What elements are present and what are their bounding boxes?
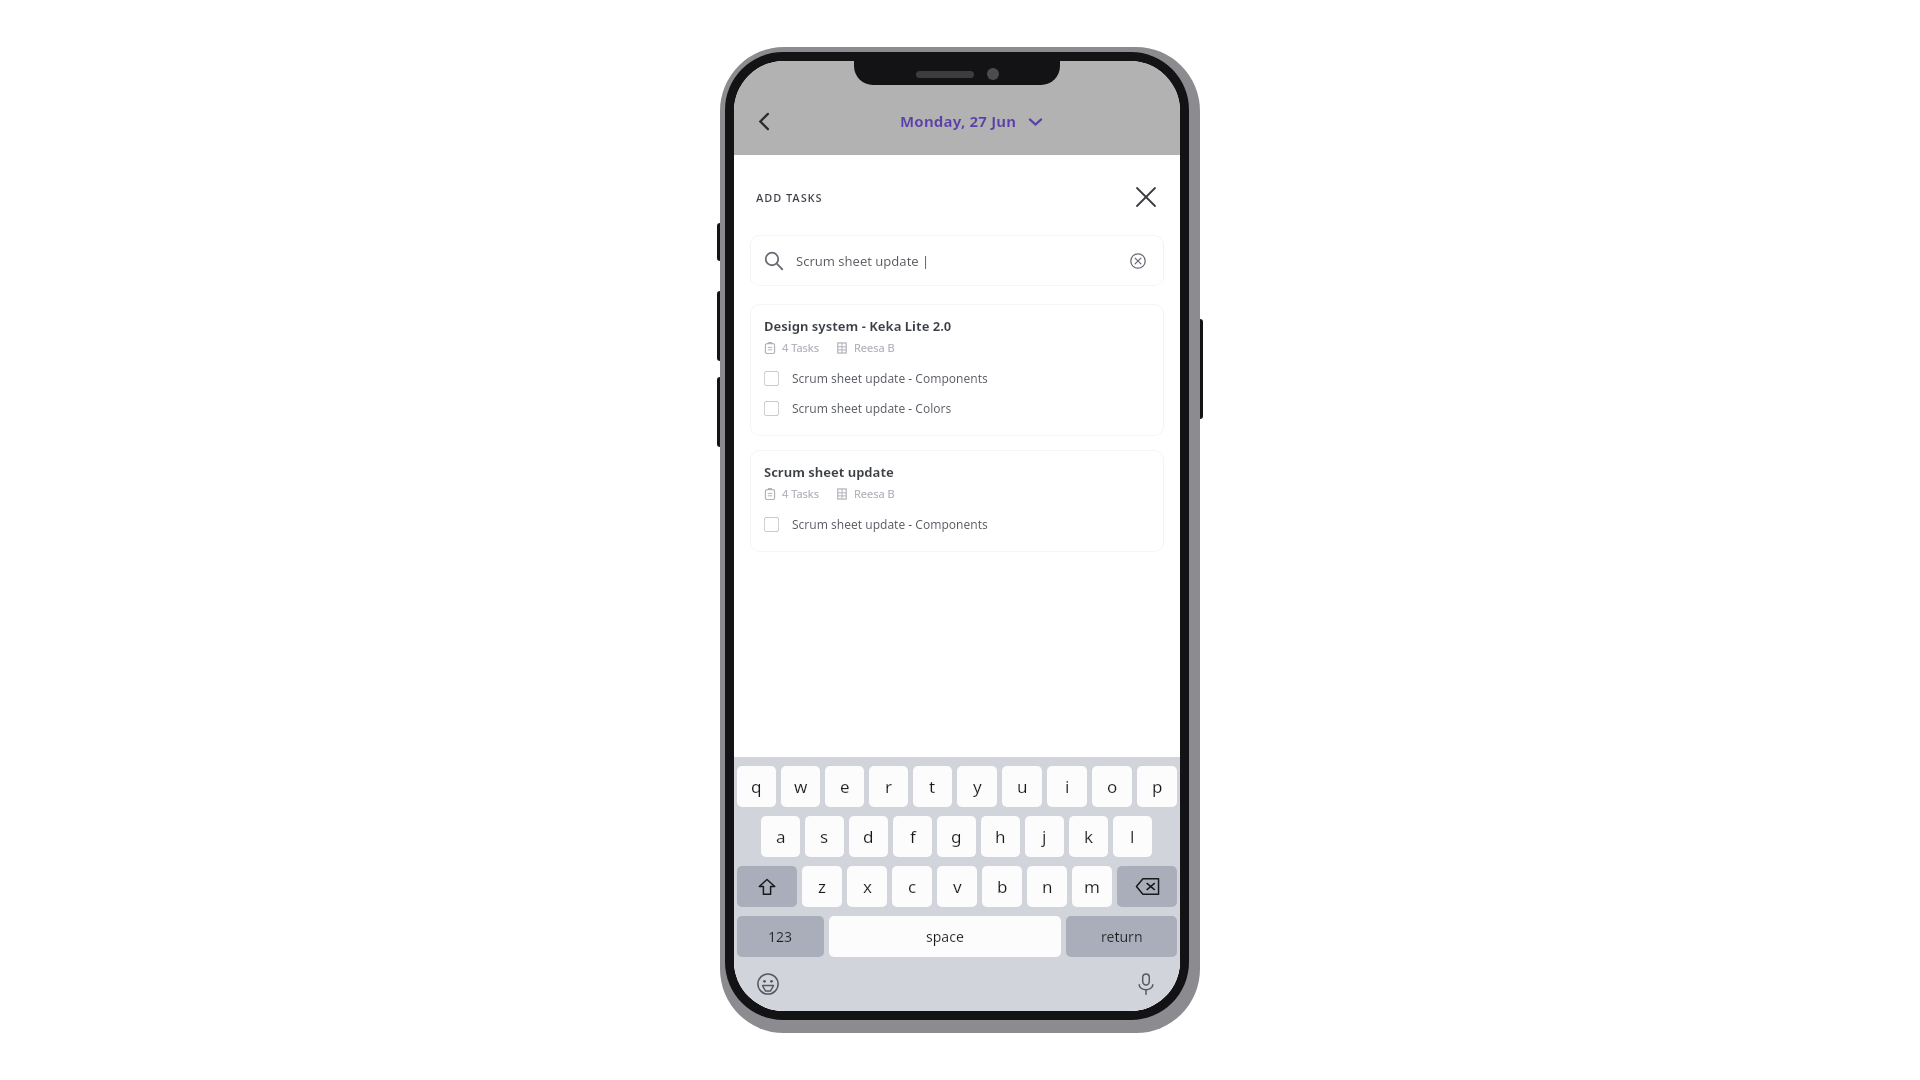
button[interactable]: l (1113, 816, 1152, 857)
staticText: 4 Tasks (782, 340, 819, 355)
staticText: Scrum sheet update | (796, 252, 930, 270)
button[interactable]: m (1072, 866, 1112, 907)
staticText: n (1042, 875, 1053, 898)
staticText: Reesa B (854, 340, 895, 355)
staticText: Scrum sheet update (764, 463, 894, 481)
button[interactable]: Design system - Keka Lite 2.0 (750, 304, 1164, 436)
button[interactable]: z (802, 866, 842, 907)
button[interactable]: r (869, 766, 908, 807)
button[interactable]: Close (1128, 179, 1164, 215)
button[interactable]: Scrum sheet update (750, 450, 1164, 552)
button[interactable]: f (893, 816, 932, 857)
staticText: 4 Tasks (782, 486, 819, 501)
staticText: x (863, 875, 872, 898)
button[interactable]: i (1047, 766, 1087, 807)
button[interactable]: h (981, 816, 1020, 857)
staticText: Reesa B (854, 486, 895, 501)
button[interactable]: j (1025, 816, 1064, 857)
button[interactable]: d (849, 816, 888, 857)
staticText: z (818, 875, 826, 898)
button[interactable]: Emoji (750, 966, 786, 1002)
button[interactable]: Back (744, 101, 784, 141)
button[interactable]: 123 (737, 916, 824, 957)
staticText: b (997, 875, 1008, 898)
button[interactable]: y (957, 766, 997, 807)
staticText: m (1084, 875, 1100, 898)
button[interactable]: space (829, 916, 1061, 957)
button[interactable]: e (825, 766, 864, 807)
staticText: t (929, 775, 936, 798)
button[interactable]: t (913, 766, 952, 807)
button[interactable]: Shift (737, 866, 797, 907)
staticText: Design system - Keka Lite 2.0 (764, 317, 952, 335)
button[interactable]: Backspace (1117, 866, 1177, 907)
staticText: u (1017, 775, 1028, 798)
button[interactable]: Scrum sheet update - Components (764, 509, 1150, 539)
button[interactable]: k (1069, 816, 1108, 857)
staticText: v (953, 875, 962, 898)
button[interactable]: n (1027, 866, 1067, 907)
staticText: s (820, 825, 829, 848)
staticText: l (1130, 825, 1135, 848)
staticText: h (995, 825, 1006, 848)
staticText: f (910, 825, 916, 848)
button[interactable]: Scrum sheet update | (750, 235, 1164, 286)
staticText: d (863, 825, 874, 848)
button[interactable]: Dictate (1128, 966, 1164, 1002)
button[interactable]: a (761, 816, 800, 857)
staticText: a (776, 825, 786, 848)
staticText: Scrum sheet update - Colors (792, 400, 952, 416)
button[interactable]: w (781, 766, 820, 807)
staticText: y (973, 775, 982, 798)
staticText: return (1101, 927, 1143, 946)
button[interactable]: Clear search (1126, 249, 1150, 273)
staticText: j (1042, 825, 1047, 848)
button[interactable]: x (847, 866, 887, 907)
button[interactable]: b (982, 866, 1022, 907)
button[interactable]: Scrum sheet update - Components (764, 363, 1150, 393)
staticText: r (885, 775, 893, 798)
staticText: Scrum sheet update - Components (792, 516, 988, 532)
button[interactable]: return (1066, 916, 1177, 957)
button[interactable]: g (937, 816, 976, 857)
staticText: w (794, 775, 808, 798)
button[interactable]: p (1137, 766, 1177, 807)
button[interactable]: o (1092, 766, 1132, 807)
staticText: ADD TASKS (756, 190, 823, 205)
button[interactable]: s (805, 816, 844, 857)
staticText: space (926, 927, 964, 946)
staticText: c (908, 875, 917, 898)
button[interactable]: Scrum sheet update - Colors (764, 393, 1150, 423)
staticText: k (1084, 825, 1094, 848)
staticText: g (951, 825, 962, 848)
button[interactable]: v (937, 866, 977, 907)
button[interactable]: q (737, 766, 776, 807)
staticText: Scrum sheet update - Components (792, 370, 988, 386)
staticText: e (840, 775, 850, 798)
staticText: Monday, 27 Jun (900, 111, 1017, 131)
button[interactable]: u (1002, 766, 1042, 807)
staticText: i (1065, 775, 1070, 798)
staticText: q (751, 775, 762, 798)
button[interactable]: Monday, 27 Jun (900, 111, 1043, 131)
staticText: o (1107, 775, 1118, 798)
staticText: 123 (768, 927, 793, 946)
button[interactable]: c (892, 866, 932, 907)
staticText: p (1152, 775, 1163, 798)
